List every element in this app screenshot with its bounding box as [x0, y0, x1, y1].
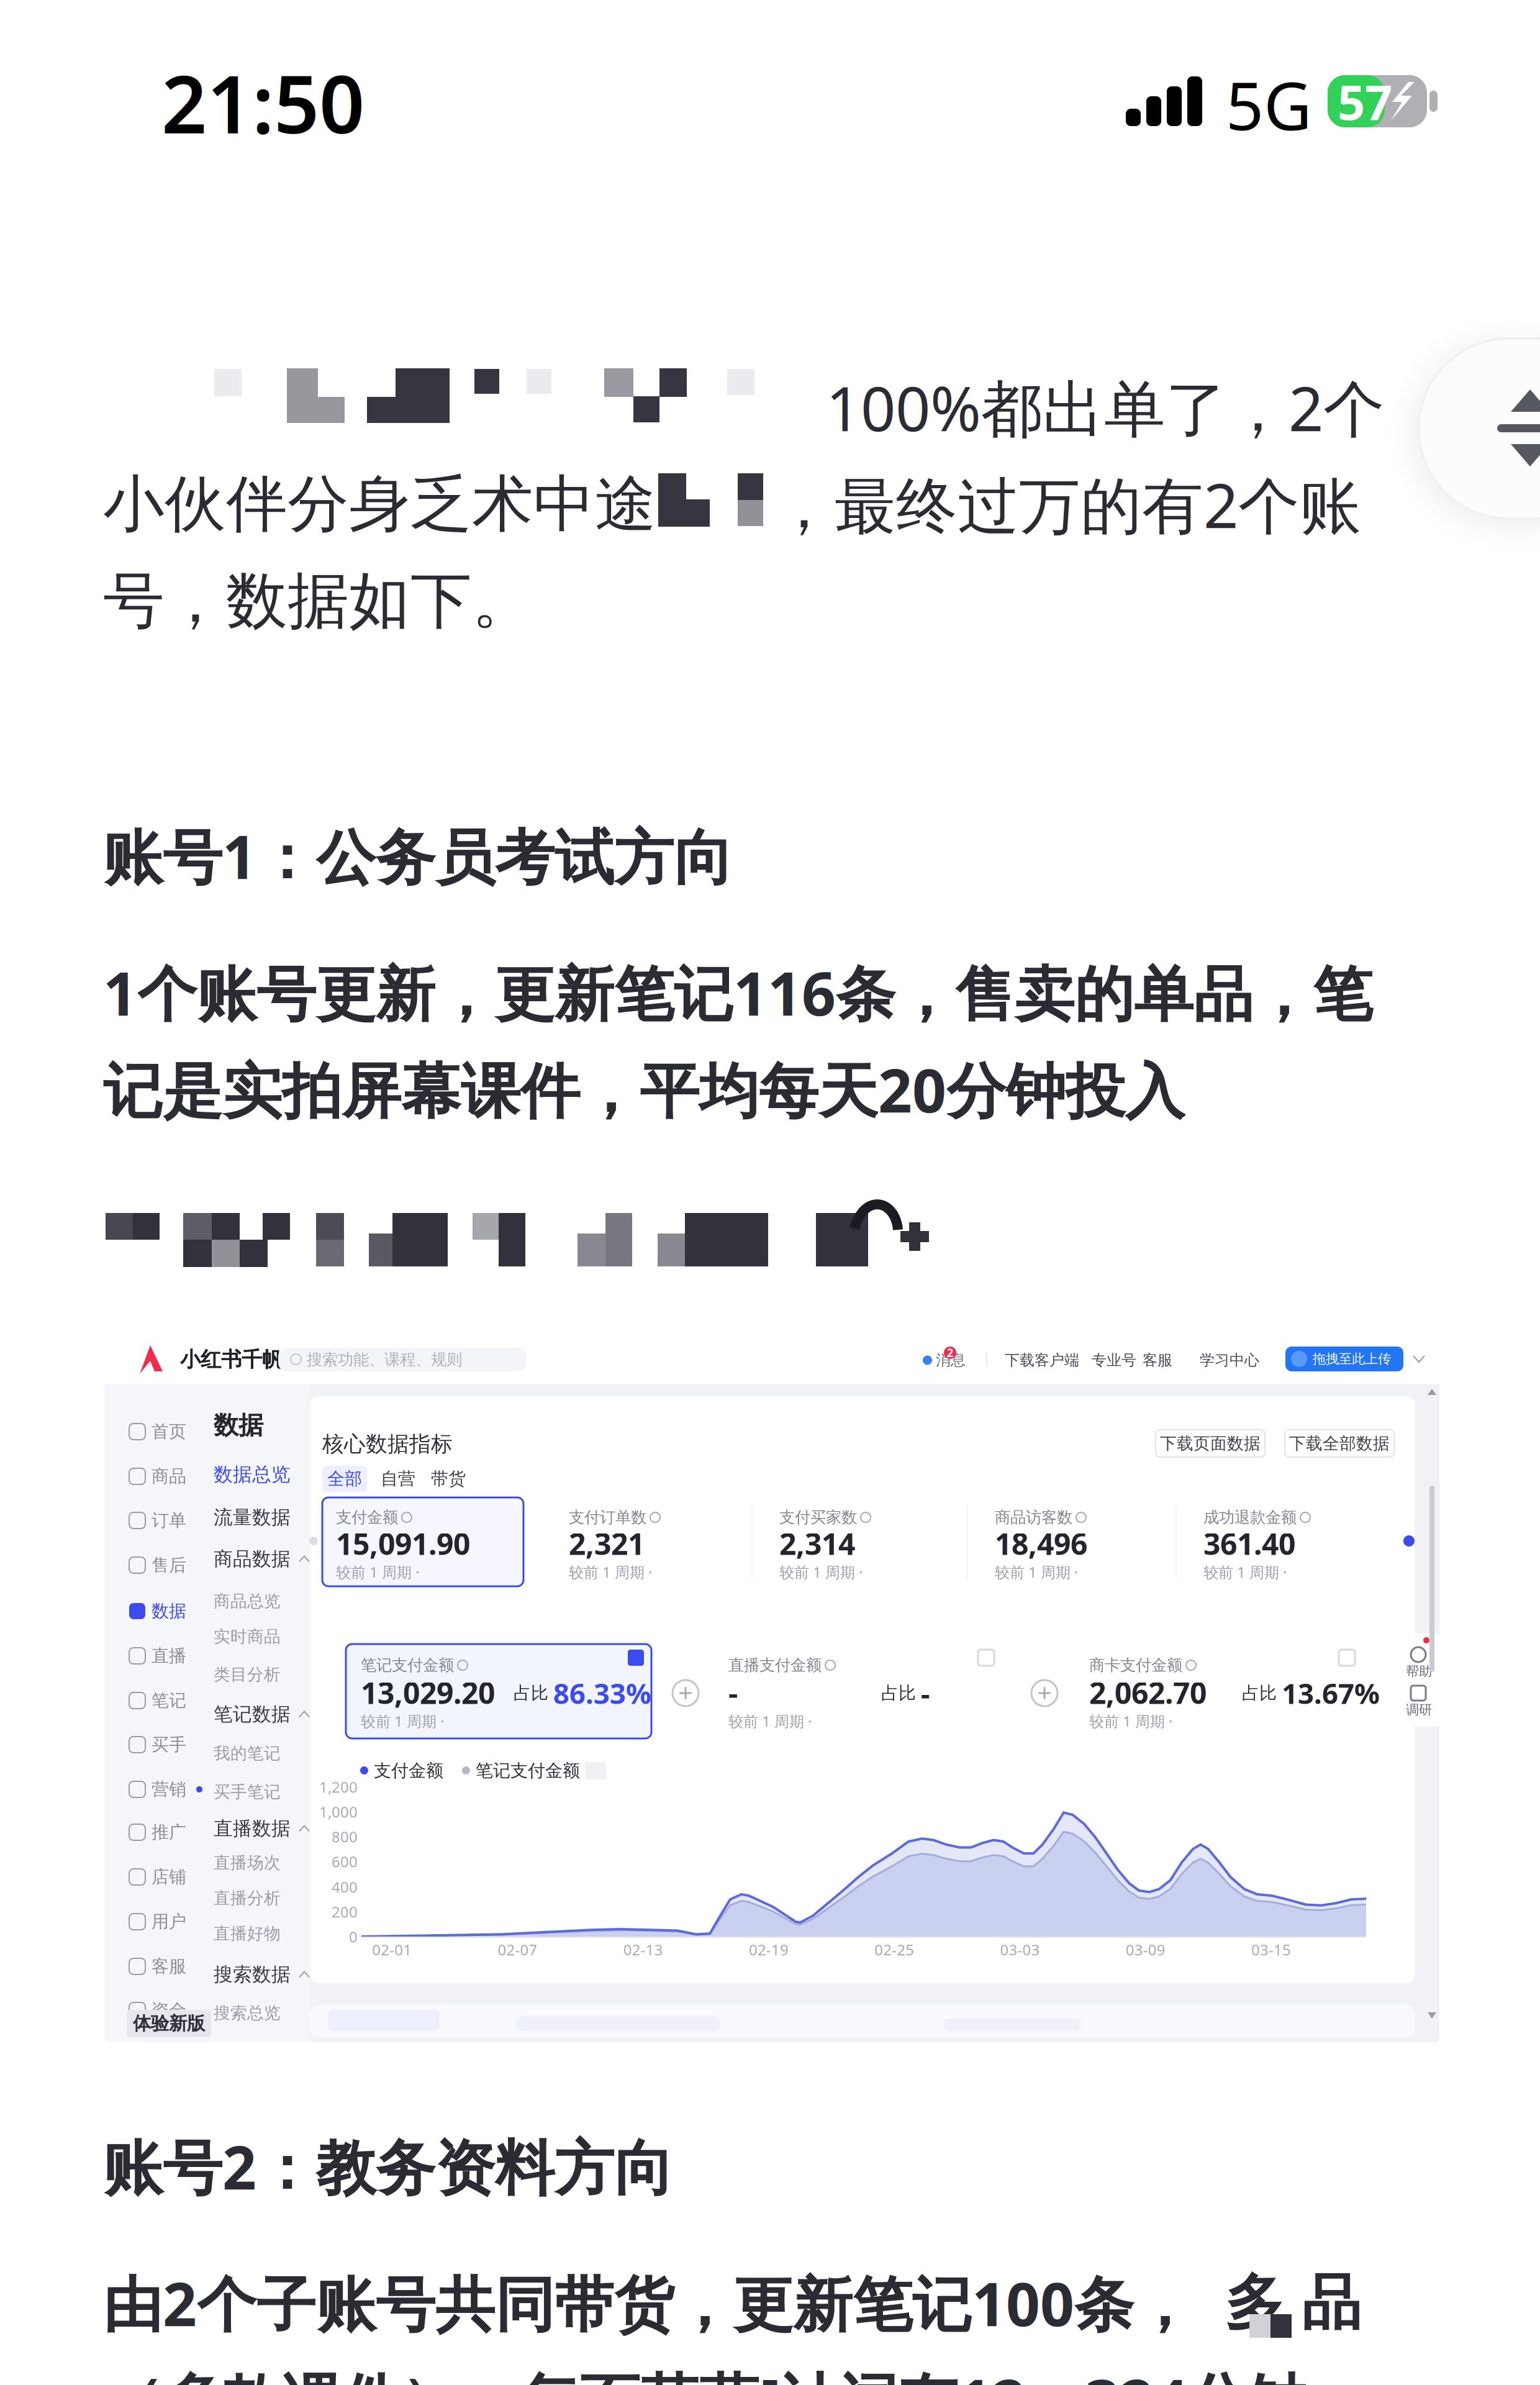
button[interactable]: 直播分析 — [214, 1881, 315, 1915]
staticText: 下载页面数据 — [1160, 1433, 1261, 1454]
staticText: 下载客户端 — [1005, 1351, 1079, 1369]
button[interactable]: 笔记 — [129, 1679, 222, 1722]
staticText: 0 — [349, 1927, 358, 1947]
staticText: 占比 — [881, 1682, 916, 1704]
button[interactable]: 买手笔记 — [214, 1775, 315, 1809]
staticText: 账号1：公务员考试方向 — [103, 816, 733, 895]
staticText: 较前 1 周期 · — [995, 1562, 1078, 1582]
staticText: 首页 — [152, 1421, 186, 1442]
staticText: 5G — [1226, 60, 1312, 148]
staticText: 02-07 — [498, 1940, 537, 1960]
staticText: 02-25 — [874, 1940, 914, 1960]
staticText: 21:50 — [161, 50, 365, 155]
staticText: ，最终过万的有2个账 — [773, 464, 1361, 545]
button[interactable]: 客服 — [129, 1945, 222, 1988]
button[interactable]: 全部 — [322, 1466, 367, 1492]
button[interactable]: 买手 — [129, 1723, 222, 1766]
staticText: 600 — [332, 1852, 358, 1871]
staticText: 02-01 — [372, 1940, 412, 1960]
staticText: 买手笔记 — [214, 1782, 281, 1802]
staticText: 直播数据 — [214, 1817, 291, 1840]
button[interactable]: 专业号 — [1092, 1351, 1139, 1370]
button[interactable]: 学习中心 — [1200, 1351, 1262, 1370]
button[interactable]: 我的笔记 — [214, 1737, 315, 1770]
staticText: 数据 — [152, 1600, 186, 1622]
staticText: 03-03 — [1000, 1940, 1040, 1960]
staticText: 2,062.70 — [1089, 1673, 1207, 1712]
button[interactable]: 客服 — [1143, 1350, 1181, 1370]
button[interactable]: 实时商品 — [214, 1620, 315, 1653]
staticText: 2 — [947, 1345, 953, 1360]
button[interactable]: 直播好物 — [214, 1917, 315, 1950]
button[interactable]: 首页 — [129, 1410, 222, 1453]
staticText: 专业号 — [1092, 1351, 1136, 1369]
button[interactable]: 用户 — [129, 1900, 222, 1943]
button[interactable]: 直播场次 — [214, 1846, 315, 1879]
staticText: 店铺 — [152, 1866, 186, 1888]
button[interactable]: 营销 — [129, 1768, 222, 1811]
staticText: 学习中心 — [1200, 1351, 1259, 1369]
button[interactable]: 类目分析 — [214, 1658, 315, 1691]
button[interactable]: 拖拽至此上传 — [1285, 1346, 1416, 1372]
button[interactable]: 直播数据 — [214, 1812, 315, 1845]
staticText: 商品总览 — [214, 1591, 281, 1611]
staticText: 较前 1 周期 · — [361, 1711, 444, 1731]
button[interactable]: Add metric — [1031, 1680, 1058, 1706]
staticText: 客服 — [152, 1956, 186, 1977]
button[interactable]: Add metric — [673, 1680, 699, 1706]
button[interactable]: Scroll up or down — [1419, 338, 1540, 519]
staticText: 搜索功能、课程、规则 — [307, 1350, 462, 1369]
button[interactable]: 流量数据 — [214, 1501, 315, 1534]
staticText: 直播支付金额 — [728, 1655, 822, 1675]
staticText: 400 — [332, 1877, 358, 1897]
button[interactable]: 搜索总览 — [214, 1996, 315, 2030]
staticText: - — [728, 1673, 738, 1712]
staticText: 2,321 — [569, 1524, 645, 1563]
staticText: 流量数据 — [214, 1506, 291, 1529]
staticText: 我的笔记 — [214, 1743, 281, 1764]
button[interactable]: 消息 — [923, 1351, 976, 1370]
staticText: 支付金额 — [336, 1508, 398, 1527]
staticText: 03-15 — [1251, 1940, 1291, 1960]
staticText: 订单 — [152, 1510, 186, 1531]
staticText: 笔记支付金额 — [476, 1760, 580, 1781]
button[interactable]: 店铺 — [129, 1855, 222, 1899]
staticText: 86.33% — [553, 1674, 651, 1712]
button[interactable]: 商品数据 — [214, 1542, 315, 1576]
button[interactable]: Search — [278, 1348, 527, 1371]
staticText: 较前 1 周期 · — [569, 1562, 652, 1582]
staticText: 商品访客数 — [995, 1508, 1072, 1527]
button[interactable]: 笔记数据 — [214, 1697, 315, 1731]
button[interactable]: 数据 — [129, 1589, 222, 1633]
staticText: 1个账号更新，更新笔记116条，售卖的单品，笔 — [103, 953, 1372, 1032]
button[interactable]: 下载全部数据 — [1285, 1430, 1394, 1457]
staticText: 直播好物 — [214, 1923, 281, 1944]
button[interactable]: 体验新版 — [127, 2010, 211, 2037]
staticText: 800 — [332, 1827, 358, 1847]
staticText: 直播分析 — [214, 1888, 281, 1908]
staticText: 商卡支付金额 — [1089, 1655, 1182, 1675]
staticText: 推广 — [152, 1822, 186, 1843]
button[interactable]: 售后 — [129, 1543, 222, 1587]
button[interactable]: 推广 — [129, 1810, 222, 1854]
staticText: 1,000 — [319, 1802, 358, 1822]
staticText: 较前 1 周期 · — [779, 1562, 863, 1582]
button[interactable]: 下载客户端 — [1005, 1351, 1079, 1370]
button[interactable]: 带货 — [426, 1466, 471, 1492]
button[interactable]: 直播 — [129, 1634, 222, 1678]
staticText: 多 — [1225, 2266, 1284, 2340]
button[interactable]: 数据总览 — [214, 1458, 315, 1491]
staticText: 实时商品 — [214, 1626, 281, 1647]
staticText: 资金 — [152, 2000, 186, 2021]
staticText: 361.40 — [1203, 1524, 1295, 1563]
button[interactable]: 自营 — [376, 1466, 420, 1492]
staticText: 成功退款金额 — [1203, 1508, 1297, 1527]
button[interactable]: 商品 — [129, 1455, 222, 1498]
button[interactable]: 资金 — [129, 1989, 222, 2032]
button[interactable]: 订单 — [129, 1499, 222, 1542]
staticText: 直播场次 — [214, 1852, 281, 1873]
button[interactable]: 下载页面数据 — [1156, 1430, 1265, 1457]
button[interactable]: 商品总览 — [214, 1584, 315, 1618]
button[interactable]: 搜索数据 — [214, 1958, 315, 1991]
staticText: 1,200 — [319, 1777, 358, 1797]
